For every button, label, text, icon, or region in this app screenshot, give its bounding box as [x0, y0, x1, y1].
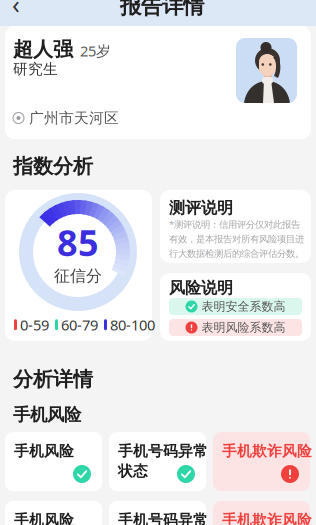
staticText: 85: [57, 218, 99, 266]
staticText: 广州市天河区: [29, 109, 119, 127]
staticText: ‹: [12, 0, 20, 21]
button[interactable]: 手机欺诈风险: [213, 501, 310, 525]
staticText: 0-59: [20, 315, 49, 334]
staticText: 征信分: [54, 266, 102, 286]
staticText: 手机风险: [14, 511, 74, 525]
button[interactable]: 手机风险: [5, 432, 102, 491]
button[interactable]: 手机号码异常: [109, 432, 206, 491]
staticText: 分析详情: [13, 367, 93, 392]
staticText: 测评说明: [169, 198, 233, 218]
staticText: 手机风险: [13, 404, 81, 425]
staticText: 手机风险: [14, 442, 74, 460]
staticText: 手机欺诈风险: [222, 511, 312, 525]
staticText: 报告详情: [120, 0, 204, 19]
staticText: 80-100: [110, 315, 155, 334]
button[interactable]: 手机风险: [5, 501, 102, 525]
staticText: 研究生: [13, 60, 58, 78]
button[interactable]: 手机欺诈风险: [213, 432, 310, 491]
staticText: 手机号码异常: [118, 511, 208, 525]
staticText: 表明安全系数高: [201, 299, 285, 314]
staticText: 风险说明: [169, 278, 233, 298]
staticText: *测评说明：信用评分仅对此报告: [169, 218, 300, 230]
staticText: 60-79: [61, 315, 98, 334]
staticText: 超人强: [13, 37, 73, 62]
button[interactable]: Back: [6, 0, 26, 13]
staticText: 手机欺诈风险: [222, 442, 312, 460]
staticText: 状态: [118, 462, 148, 480]
staticText: 有效，是本报告对所有风险项目进: [169, 233, 304, 245]
staticText: 指数分析: [13, 154, 93, 179]
staticText: 25岁: [80, 41, 111, 61]
staticText: 行大数据检测后的综合评估分数。: [169, 248, 304, 259]
staticText: 表明风险系数高: [201, 320, 285, 335]
button[interactable]: 手机号码异常: [109, 501, 206, 525]
staticText: 手机号码异常: [118, 442, 208, 460]
